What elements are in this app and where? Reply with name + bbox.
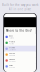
staticText: Notes [9, 64, 13, 66]
staticText: Last week [9, 49, 16, 51]
button[interactable]: Flagged [4, 57, 36, 63]
staticText: 2 urgent [9, 61, 15, 62]
staticText: Synced [9, 66, 15, 68]
staticText: Archive [9, 47, 15, 49]
staticText: 3 people [9, 55, 15, 56]
staticText: Where to file this? [5, 29, 31, 32]
button[interactable]: Inbox [4, 34, 36, 40]
staticText: Built for the way you work [2, 3, 38, 7]
staticText: 4 active [9, 43, 14, 45]
button[interactable]: Archive [4, 46, 36, 52]
button[interactable]: Notes [4, 63, 36, 69]
staticText: Flagged [9, 59, 15, 60]
button[interactable]: Projects [4, 40, 36, 46]
staticText: Inbox [9, 35, 13, 37]
staticText: Shared [9, 53, 15, 54]
staticText: Projects [9, 41, 15, 43]
staticText: 12 items [9, 37, 14, 39]
staticText: All in one place [8, 7, 31, 11]
button[interactable]: Shared [4, 52, 36, 57]
